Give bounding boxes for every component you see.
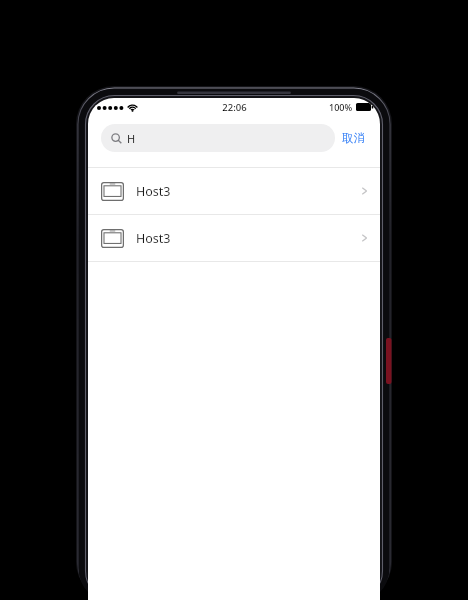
other: Display [101, 182, 124, 201]
staticText: Host3 [136, 230, 361, 247]
staticText: 100% [329, 101, 353, 113]
button[interactable]: H [101, 124, 335, 152]
staticText: Host3 [136, 183, 361, 200]
other: Display [101, 229, 124, 248]
staticText: 取消 [342, 131, 365, 145]
staticText: 22:06 [222, 101, 247, 114]
button[interactable]: Display [88, 168, 380, 214]
button[interactable]: 取消 [335, 125, 372, 151]
button[interactable]: Display [88, 215, 380, 261]
staticText: H [127, 131, 136, 146]
